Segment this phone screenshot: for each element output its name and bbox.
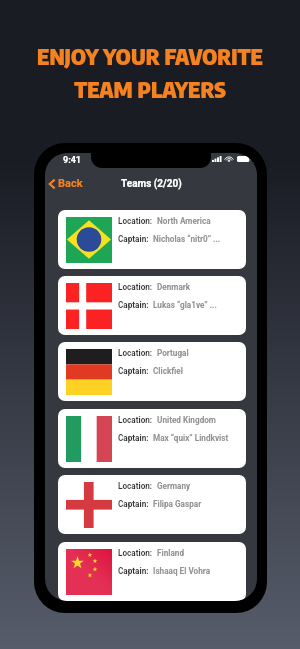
- button[interactable]: Location:: [58, 409, 246, 468]
- staticText: ENJOY YOUR FAVORITE: [0, 42, 300, 70]
- staticText: Clickfiel: [153, 366, 183, 376]
- staticText: Back: [58, 177, 83, 190]
- staticText: Filipa Gaspar: [153, 499, 202, 509]
- staticText: Captain:: [118, 300, 149, 310]
- staticText: Captain:: [118, 234, 149, 244]
- staticText: TEAM PLAYERS: [0, 75, 300, 103]
- staticText: Germany: [157, 481, 191, 491]
- staticText: Nicholas “nitr0” ...: [153, 234, 221, 244]
- staticText: Location:: [118, 548, 153, 558]
- button[interactable]: Back: [45, 173, 89, 194]
- staticText: 9:41: [63, 155, 82, 166]
- staticText: Max “quix” Lindkvist: [153, 433, 229, 443]
- button[interactable]: Location:: [58, 276, 246, 335]
- staticText: Denmark: [157, 282, 191, 292]
- staticText: United Kingdom: [157, 415, 216, 425]
- staticText: Ishaaq El Vohra: [153, 566, 211, 576]
- staticText: Captain:: [118, 499, 149, 509]
- staticText: Location:: [118, 415, 153, 425]
- button[interactable]: Location:: [58, 342, 246, 401]
- staticText: Teams (2/20): [121, 178, 182, 190]
- staticText: Location:: [118, 216, 153, 226]
- staticText: Lukas “gla1ve” ...: [153, 300, 217, 310]
- staticText: Location:: [118, 481, 153, 491]
- staticText: North America: [157, 216, 211, 226]
- button[interactable]: Location:: [58, 475, 246, 534]
- staticText: Captain:: [118, 366, 149, 376]
- staticText: Captain:: [118, 433, 149, 443]
- staticText: Portugal: [157, 348, 189, 358]
- staticText: Location:: [118, 348, 153, 358]
- staticText: Captain:: [118, 566, 149, 576]
- staticText: Location:: [118, 282, 153, 292]
- staticText: Finland: [157, 548, 184, 558]
- button[interactable]: Location:: [58, 542, 246, 601]
- button[interactable]: Location:: [58, 210, 246, 269]
